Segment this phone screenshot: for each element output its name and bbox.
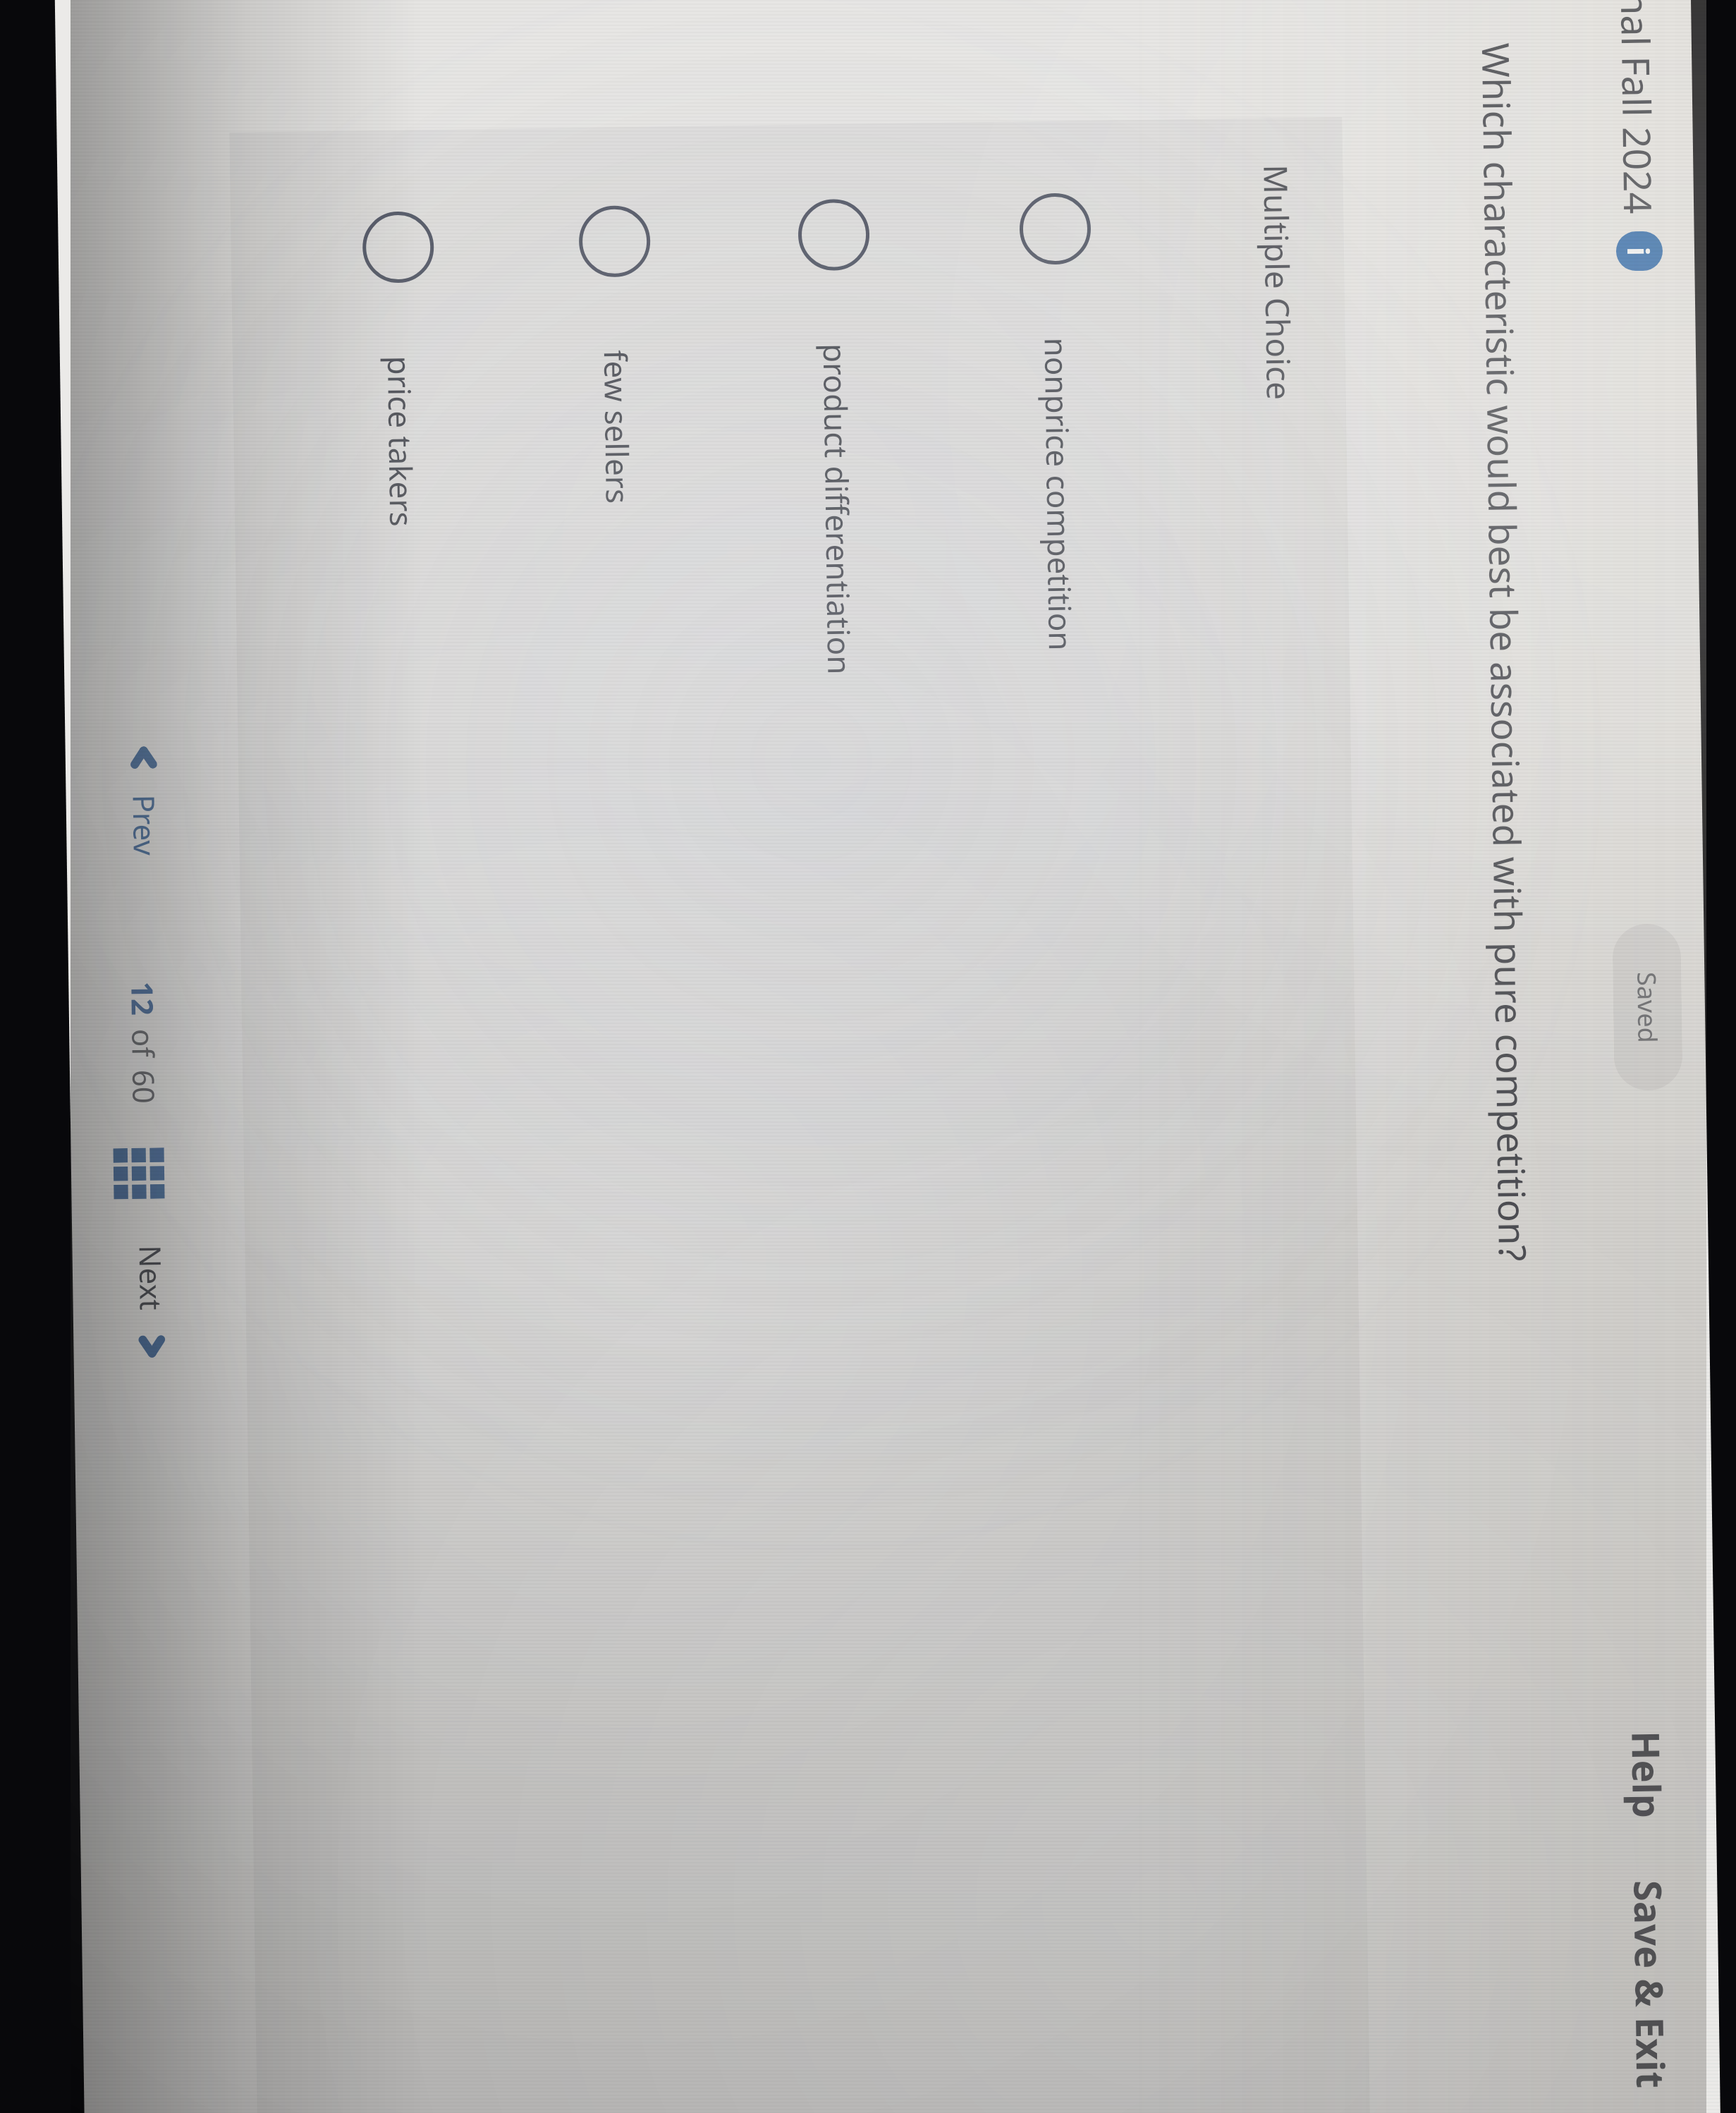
button[interactable]: price takers	[362, 212, 447, 1200]
staticText: 60	[124, 1069, 165, 1105]
button[interactable]: Prev	[119, 736, 170, 861]
staticText: nonprice competition	[1036, 337, 1082, 652]
staticText: i	[1619, 247, 1659, 256]
staticText: Prev	[124, 794, 165, 856]
staticText: Help	[1621, 1730, 1674, 1819]
staticText: 12	[123, 981, 164, 1016]
button[interactable]: Information	[1616, 231, 1663, 271]
button[interactable]: nonprice competition	[1019, 193, 1104, 1181]
staticText: Save & Exit	[1623, 1880, 1678, 2089]
button[interactable]: few sellers	[579, 206, 663, 1194]
staticText: Next	[131, 1245, 172, 1311]
staticText: product differentiation	[814, 343, 861, 675]
staticText: Which characteristic would best be assoc…	[1471, 43, 1539, 1262]
button[interactable]: Question list	[110, 1145, 168, 1202]
staticText: of	[124, 1029, 164, 1057]
button[interactable]: Help	[1599, 1714, 1695, 1835]
button[interactable]: product differentiation	[798, 199, 882, 1187]
staticText: few sellers	[595, 350, 639, 504]
staticText: Saved	[1630, 972, 1665, 1043]
staticText: Principles of Economics Final Fall 2024	[1603, 0, 1665, 215]
button[interactable]: Principles of Economics Final Fall 2024	[1595, 0, 1673, 271]
button[interactable]: Save & Exit	[1601, 1846, 1699, 2113]
staticText: price takers	[379, 356, 423, 528]
button[interactable]: Next	[126, 1241, 177, 1368]
staticText: Multiple Choice	[1254, 164, 1302, 400]
